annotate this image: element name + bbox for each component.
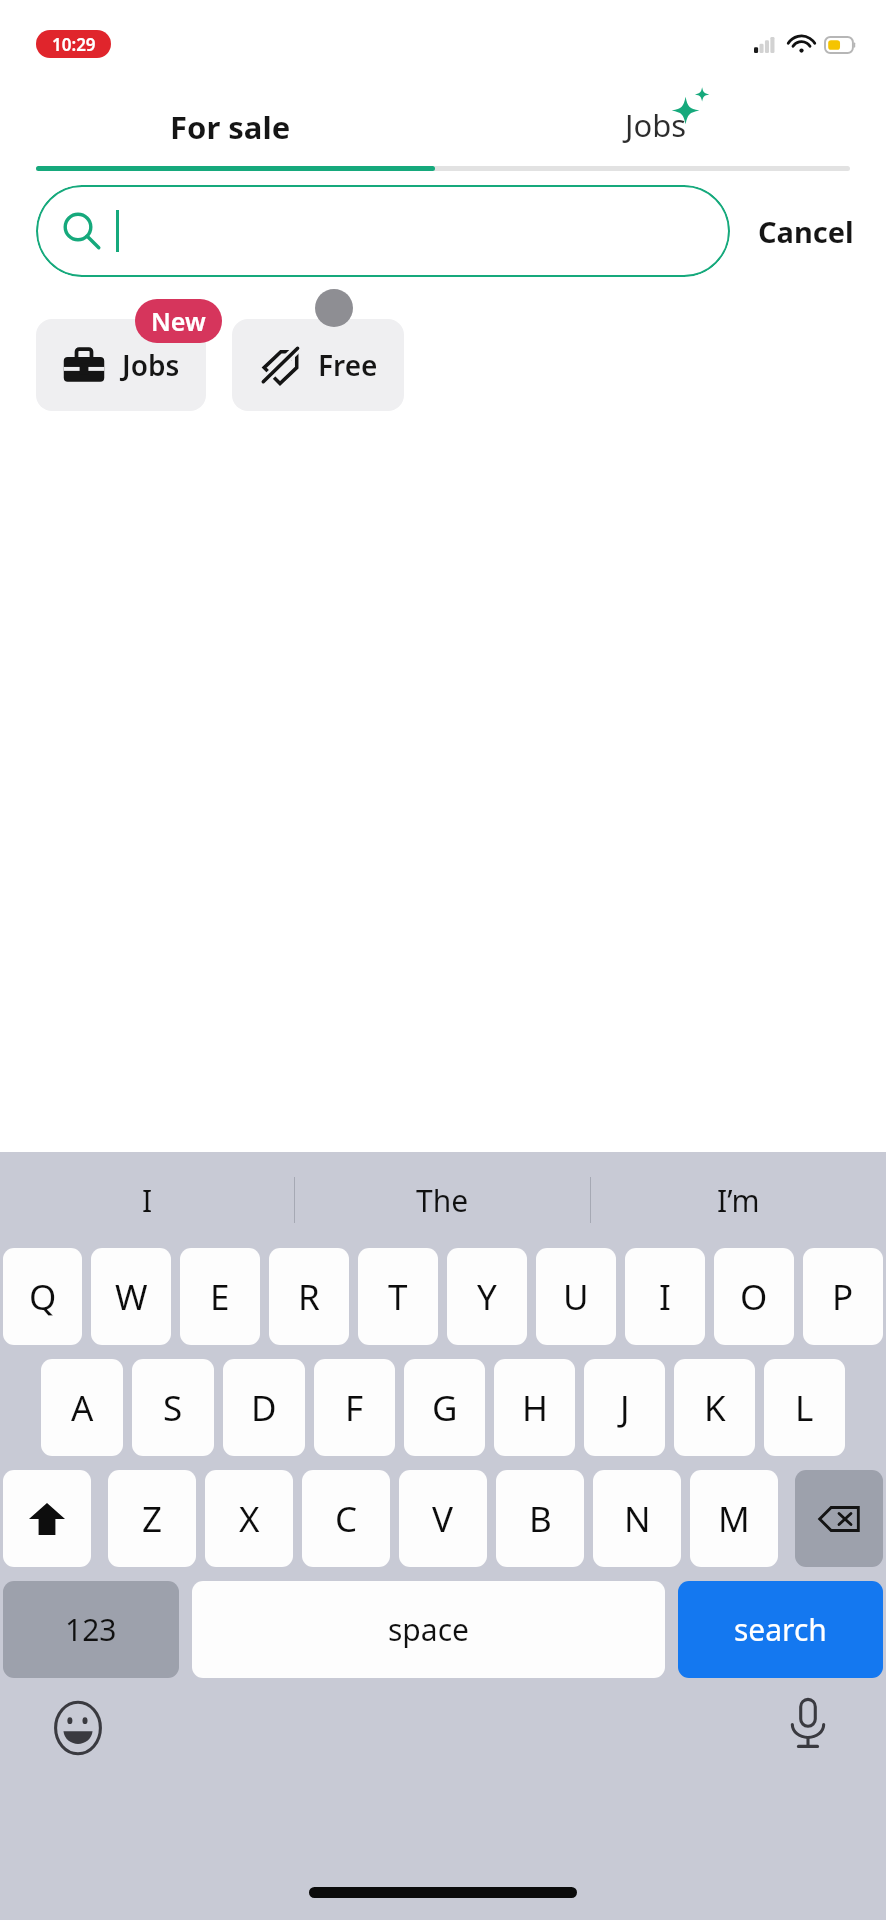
button[interactable]: Y xyxy=(447,1248,527,1345)
staticText: Jobs xyxy=(625,104,687,146)
button[interactable]: K xyxy=(674,1359,755,1456)
button[interactable]: space xyxy=(192,1581,665,1678)
button[interactable]: U xyxy=(536,1248,616,1345)
staticText: W xyxy=(115,1273,148,1321)
staticText: I xyxy=(142,1180,153,1221)
button[interactable]: L xyxy=(764,1359,845,1456)
button[interactable]: R xyxy=(269,1248,349,1345)
staticText: I xyxy=(659,1273,671,1321)
button[interactable]: Emoji xyxy=(50,1700,106,1756)
button[interactable]: O xyxy=(714,1248,794,1345)
staticText: V xyxy=(432,1495,454,1543)
staticText: P xyxy=(832,1273,854,1321)
button[interactable]: The xyxy=(295,1152,590,1248)
staticText: T xyxy=(388,1273,408,1321)
button[interactable]: Shift xyxy=(3,1470,91,1567)
staticText: N xyxy=(624,1495,651,1543)
button[interactable]: Free xyxy=(232,319,404,411)
staticText: F xyxy=(345,1384,364,1432)
button[interactable]: N xyxy=(593,1470,681,1567)
button[interactable]: E xyxy=(180,1248,260,1345)
staticText: A xyxy=(71,1384,94,1432)
staticText: X xyxy=(239,1495,260,1543)
button[interactable]: W xyxy=(91,1248,171,1345)
button[interactable]: search xyxy=(678,1581,883,1678)
staticText: S xyxy=(163,1384,183,1432)
staticText: space xyxy=(388,1609,469,1650)
button[interactable]: I’m xyxy=(591,1152,886,1248)
staticText: H xyxy=(522,1384,548,1432)
staticText: R xyxy=(298,1273,320,1321)
button[interactable]: P xyxy=(803,1248,883,1345)
button[interactable]: X xyxy=(205,1470,293,1567)
button[interactable]: S xyxy=(132,1359,214,1456)
staticText: E xyxy=(210,1273,230,1321)
button[interactable]: H xyxy=(494,1359,575,1456)
staticText: 10:29 xyxy=(52,33,96,56)
staticText: Y xyxy=(477,1273,497,1321)
button[interactable]: 123 xyxy=(3,1581,179,1678)
staticText: Free xyxy=(318,346,378,384)
button[interactable]: For sale xyxy=(18,88,443,166)
staticText: 123 xyxy=(65,1609,117,1650)
button[interactable]: Q xyxy=(3,1248,82,1345)
staticText: U xyxy=(563,1273,589,1321)
staticText: New xyxy=(151,304,206,338)
staticText: B xyxy=(529,1495,552,1543)
staticText: I’m xyxy=(717,1180,760,1221)
button[interactable]: G xyxy=(404,1359,485,1456)
button[interactable]: J xyxy=(584,1359,665,1456)
staticText: G xyxy=(432,1384,458,1432)
staticText: search xyxy=(734,1609,827,1650)
staticText: Z xyxy=(142,1495,163,1543)
staticText: C xyxy=(335,1495,358,1543)
button[interactable]: Jobs xyxy=(36,319,206,411)
button[interactable]: A xyxy=(41,1359,123,1456)
button[interactable]: Cancel xyxy=(752,202,860,261)
staticText: The xyxy=(416,1180,469,1221)
button[interactable]: D xyxy=(223,1359,305,1456)
staticText: O xyxy=(740,1273,768,1321)
button[interactable]: V xyxy=(399,1470,487,1567)
button[interactable]: Delete xyxy=(795,1470,883,1567)
staticText: Cancel xyxy=(758,212,854,251)
staticText: J xyxy=(620,1384,630,1432)
button[interactable]: Jobs xyxy=(443,88,868,166)
button[interactable]: I xyxy=(0,1152,294,1248)
button[interactable]: Voice input xyxy=(780,1696,836,1752)
button[interactable]: F xyxy=(314,1359,395,1456)
button[interactable]: M xyxy=(690,1470,778,1567)
staticText: K xyxy=(704,1384,726,1432)
button[interactable]: C xyxy=(302,1470,390,1567)
staticText: M xyxy=(718,1495,750,1543)
button[interactable]: B xyxy=(496,1470,584,1567)
button[interactable]: I xyxy=(625,1248,705,1345)
button[interactable]: T xyxy=(358,1248,438,1345)
button[interactable]: Z xyxy=(108,1470,196,1567)
staticText: Jobs xyxy=(122,346,180,384)
staticText: L xyxy=(795,1384,814,1432)
button[interactable] xyxy=(36,185,730,277)
staticText: For sale xyxy=(170,106,291,148)
staticText: D xyxy=(251,1384,277,1432)
staticText: Q xyxy=(29,1273,57,1321)
